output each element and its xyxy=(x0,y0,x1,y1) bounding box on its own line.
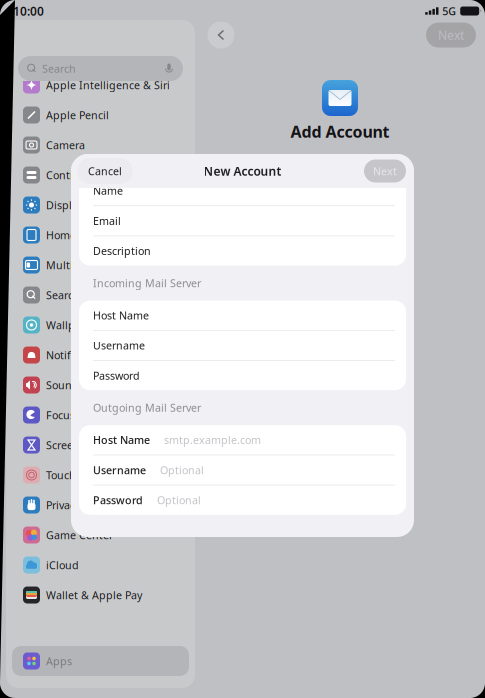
staticText: Control Center xyxy=(46,168,120,182)
button[interactable]: Apple Pencil xyxy=(6,100,195,130)
button[interactable]: Next xyxy=(426,22,476,47)
staticText: Apple Intelligence & Siri xyxy=(46,78,170,92)
staticText: iCloud xyxy=(46,558,79,572)
staticText: Home Screen & App Library xyxy=(46,228,173,242)
button[interactable]: Touch ID & Passcode xyxy=(6,460,195,490)
button[interactable]: Cancel xyxy=(77,158,133,184)
staticText: Apps xyxy=(46,654,72,668)
staticText: Wallpaper xyxy=(46,318,98,332)
staticText: Description xyxy=(93,244,151,258)
staticText: New Account xyxy=(203,163,281,179)
staticText: Host Name xyxy=(93,308,149,322)
staticText: Username xyxy=(93,338,145,352)
button[interactable]: Display & Brightness xyxy=(6,190,195,220)
staticText: Add Account xyxy=(290,121,389,142)
button[interactable]: Apple Intelligence & Siri xyxy=(6,70,195,100)
button[interactable]: Next xyxy=(364,159,406,182)
staticText: Screen Time xyxy=(46,438,108,452)
button[interactable]: Wallpaper xyxy=(6,310,195,340)
staticText: Touch ID & Passcode xyxy=(46,468,151,482)
staticText: Password xyxy=(93,368,140,383)
button[interactable]: Back xyxy=(204,18,238,52)
staticText: Display & Brightness xyxy=(46,198,152,212)
staticText: Name xyxy=(93,184,123,198)
staticText: Sounds xyxy=(46,378,84,392)
staticText: Password xyxy=(93,493,143,507)
staticText: Username xyxy=(93,463,146,477)
button[interactable]: Camera xyxy=(6,130,195,160)
button[interactable]: Home Screen & App Library xyxy=(6,220,195,250)
staticText: Search xyxy=(46,288,80,302)
button[interactable]: Focus xyxy=(6,400,195,430)
button[interactable]: Game Center xyxy=(6,520,195,550)
button[interactable]: Privacy & Security xyxy=(6,490,195,520)
staticText: Focus xyxy=(46,408,75,422)
staticText: Privacy & Security xyxy=(46,498,134,512)
staticText: Cancel xyxy=(88,164,122,178)
staticText: smtp.example.com xyxy=(164,433,261,447)
staticText: 10:00 xyxy=(13,3,44,19)
button[interactable]: iCloud xyxy=(6,550,195,580)
staticText: Notifications xyxy=(46,348,109,362)
staticText: Email xyxy=(93,214,121,228)
button[interactable]: Notifications xyxy=(6,340,195,370)
button[interactable]: Sounds xyxy=(6,370,195,400)
staticText: Next xyxy=(373,164,397,178)
button[interactable]: Search xyxy=(6,280,195,310)
staticText: Search xyxy=(42,61,76,76)
staticText: Optional xyxy=(157,493,201,507)
button[interactable]: Multitasking & Gestures xyxy=(6,250,195,280)
staticText: Wallet & Apple Pay xyxy=(46,588,142,602)
staticText: 5G xyxy=(442,4,456,18)
staticText: Next xyxy=(438,27,464,43)
staticText: Incoming Mail Server xyxy=(93,276,201,290)
button[interactable]: Wallet & Apple Pay xyxy=(6,580,195,610)
staticText: Apple Pencil xyxy=(46,108,109,122)
staticText: Game Center xyxy=(46,528,113,542)
staticText: Optional xyxy=(160,463,204,477)
button[interactable]: Screen Time xyxy=(6,430,195,460)
staticText: Outgoing Mail Server xyxy=(93,401,201,415)
button[interactable]: Control Center xyxy=(6,160,195,190)
staticText: Camera xyxy=(46,138,85,152)
staticText: Host Name xyxy=(93,433,150,447)
button[interactable]: Apps xyxy=(6,646,195,688)
staticText: Multitasking & Gestures xyxy=(46,258,170,272)
